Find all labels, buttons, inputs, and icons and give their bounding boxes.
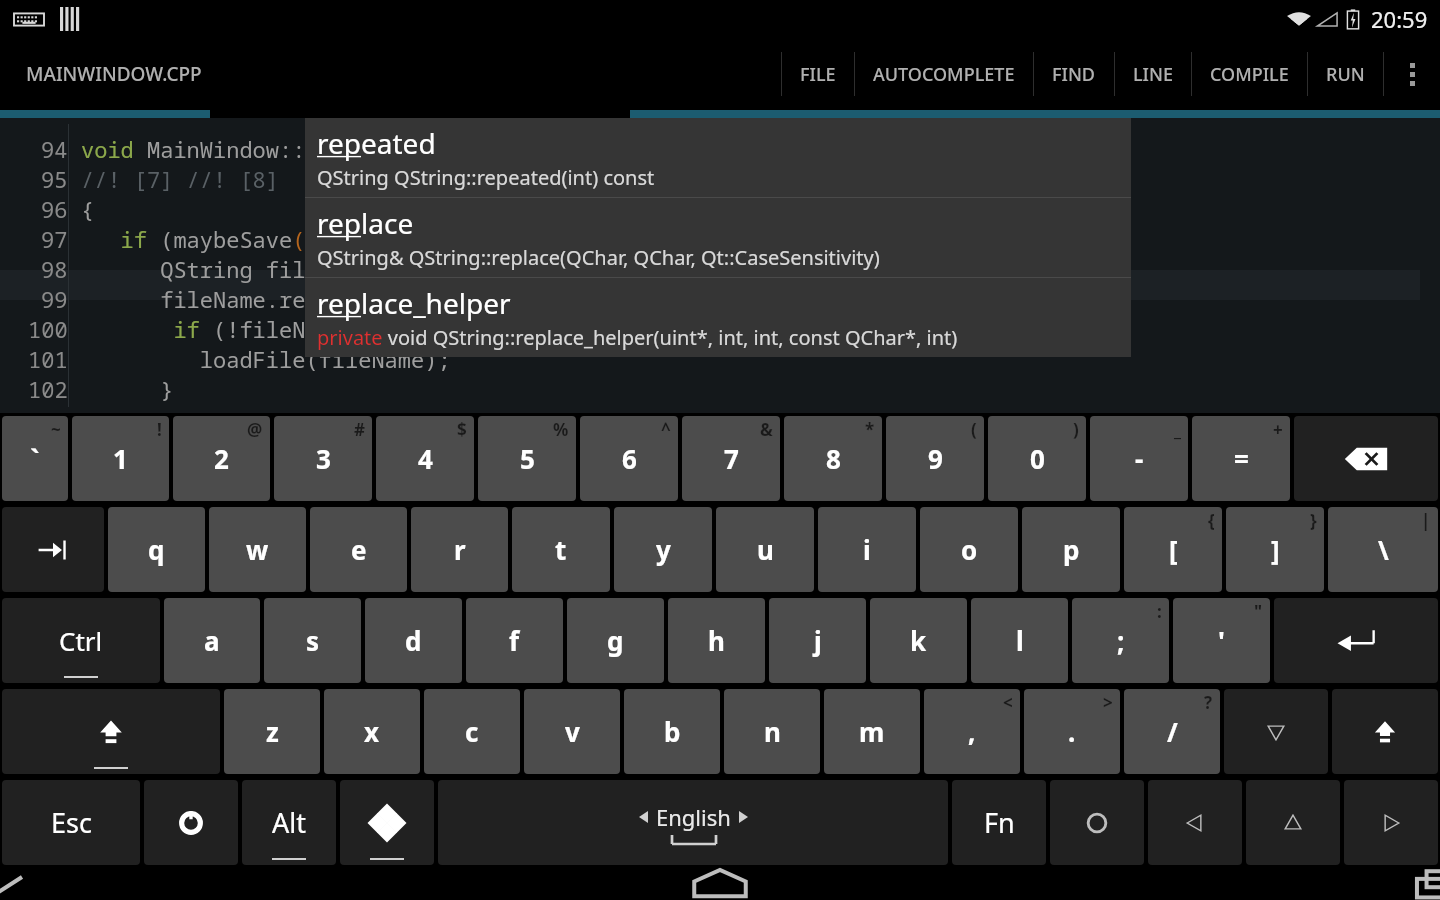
button[interactable]: ] [1226,507,1324,592]
staticText: 1 [113,441,128,476]
button[interactable]: FILE [782,38,854,110]
button[interactable]: Up [1224,689,1328,774]
button[interactable]: Ctrl [2,598,160,683]
button[interactable]: AUTOCOMPLETE [855,38,1033,110]
button[interactable]: Home [480,868,960,900]
button[interactable]: ; [1072,598,1169,683]
staticText: COMPILE [1210,62,1289,87]
button[interactable]: Enter [1274,598,1438,683]
button[interactable]: l [971,598,1068,683]
button[interactable]: i [818,507,916,592]
button[interactable]: \ [1328,507,1438,592]
button[interactable]: , [924,689,1020,774]
button[interactable]: FIND [1034,38,1114,110]
button[interactable]: 4 [376,416,474,501]
button[interactable]: j [769,598,866,683]
button[interactable]: Shift [2,689,220,774]
button[interactable]: x [324,689,420,774]
button[interactable]: Symbols [340,780,434,865]
staticText: replace_helper [317,284,511,322]
button[interactable]: 8 [784,416,882,501]
button[interactable]: 1 [72,416,169,501]
button[interactable]: w [209,507,306,592]
button[interactable]: c [424,689,520,774]
button[interactable]: 5 [478,416,576,501]
button[interactable]: z [224,689,320,774]
staticText: FILE [800,62,836,87]
button[interactable]: r [411,507,508,592]
button[interactable]: 2 [173,416,270,501]
button[interactable]: p [1022,507,1120,592]
button[interactable]: Left [1148,780,1242,865]
button[interactable]: v [524,689,620,774]
button[interactable]: Right [1344,780,1438,865]
staticText: = [1234,441,1249,476]
button[interactable]: - [1090,416,1188,501]
button[interactable]: Settings [144,780,238,865]
button[interactable]: y [614,507,712,592]
button[interactable]: u [716,507,814,592]
button[interactable]: 7 [682,416,780,501]
button[interactable]: Alt [242,780,336,865]
button[interactable]: t [512,507,610,592]
button[interactable]: 6 [580,416,678,501]
button[interactable]: [ [1124,507,1222,592]
button[interactable]: m [824,689,920,774]
button[interactable]: = [1192,416,1290,501]
button[interactable]: 3 [274,416,372,501]
button[interactable]: / [1124,689,1220,774]
button[interactable]: h [668,598,765,683]
button[interactable]: ` [2,416,68,501]
button[interactable]: 0 [988,416,1086,501]
button[interactable]: Tab [2,507,104,592]
button[interactable]: Recent apps [960,868,1440,900]
button[interactable]: e [310,507,407,592]
staticText: | [1421,509,1431,532]
button[interactable]: replace [305,198,1131,277]
button[interactable]: g [567,598,664,683]
staticText: @ [247,418,263,441]
staticText: if (maybeSave()) { [81,224,359,254]
button[interactable]: n [724,689,820,774]
button[interactable]: s [264,598,361,683]
button[interactable]: f [466,598,563,683]
staticText: Fn [984,804,1015,841]
staticText: g [607,623,624,658]
button[interactable]: RUN [1308,38,1383,110]
button[interactable]: Hide keyboard [0,868,480,900]
button[interactable]: b [624,689,720,774]
button[interactable]: ' [1173,598,1270,683]
staticText: } [81,374,174,404]
button[interactable]: d [365,598,462,683]
button[interactable]: replace_helper [305,278,1131,357]
button[interactable]: More options [1384,38,1440,110]
button[interactable]: Esc [2,780,140,865]
button[interactable]: k [870,598,967,683]
staticText: ^ [661,418,671,441]
button[interactable]: Fn [952,780,1046,865]
button[interactable]: Backspace [1294,416,1438,501]
button[interactable]: COMPILE [1192,38,1307,110]
staticText: loadFile(fileName); [81,344,451,374]
staticText: # [354,418,365,441]
button[interactable]: o [920,507,1018,592]
staticText: % [553,418,569,441]
button[interactable]: LINE [1115,38,1191,110]
staticText: English [656,802,731,832]
button[interactable]: repeated [305,118,1131,197]
staticText: ] [1271,532,1280,567]
button[interactable]: . [1024,689,1120,774]
button[interactable]: a [164,598,260,683]
staticText: _ [1174,418,1181,441]
button[interactable]: Control circle [1050,780,1144,865]
staticText: 97 [41,224,68,254]
button[interactable]: Down [1246,780,1340,865]
button[interactable]: English [438,780,948,865]
staticText: l [1016,623,1024,658]
staticText: 4 [418,441,433,476]
button[interactable]: Shift right [1332,689,1438,774]
staticText: v [565,714,580,749]
button[interactable]: q [108,507,205,592]
staticText: } [1310,509,1317,532]
button[interactable]: 9 [886,416,984,501]
